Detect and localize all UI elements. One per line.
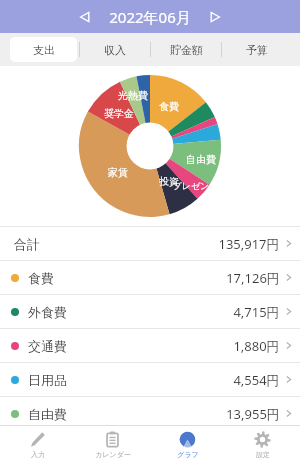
- staticText: 2022年06月: [109, 7, 191, 27]
- button[interactable]: 収入: [82, 37, 148, 62]
- staticText: 支出: [33, 43, 55, 57]
- button[interactable]: 貯金額: [153, 37, 219, 62]
- staticText: 予算: [246, 43, 268, 57]
- button[interactable]: 合計: [0, 227, 300, 260]
- staticText: 自由費: [28, 406, 67, 422]
- staticText: 135,917円: [218, 235, 280, 253]
- button[interactable]: 予算: [224, 37, 290, 62]
- button[interactable]: Previous month: [71, 3, 99, 31]
- button[interactable]: 自由費: [0, 397, 300, 430]
- button[interactable]: 入力: [0, 426, 75, 464]
- staticText: 食費: [159, 100, 179, 113]
- staticText: 4,554円: [233, 371, 280, 389]
- button[interactable]: 支出: [10, 37, 77, 62]
- button[interactable]: 食費: [0, 261, 300, 294]
- staticText: グラフ: [177, 450, 199, 459]
- button[interactable]: Next month: [201, 3, 229, 31]
- staticText: 設定: [256, 450, 270, 459]
- staticText: 交通費: [28, 338, 67, 354]
- button[interactable]: 外食費: [0, 295, 300, 328]
- button[interactable]: グラフ: [150, 426, 225, 464]
- staticText: 光熱費: [118, 89, 148, 102]
- staticText: 1,880円: [233, 337, 280, 355]
- staticText: カレンダー: [95, 450, 131, 459]
- staticText: 家賃: [108, 166, 128, 179]
- button[interactable]: 日用品: [0, 363, 300, 396]
- button[interactable]: カレンダー: [75, 426, 150, 464]
- staticText: 自由費: [186, 153, 216, 166]
- staticText: 日用品: [28, 372, 67, 388]
- staticText: プレゼント: [172, 180, 219, 191]
- staticText: 食費: [28, 270, 54, 286]
- staticText: 入力: [31, 450, 45, 459]
- staticText: 4,715円: [233, 303, 280, 321]
- staticText: 奨学金: [104, 107, 134, 120]
- button[interactable]: 交通費: [0, 329, 300, 362]
- staticText: 貯金額: [170, 43, 203, 57]
- staticText: 合計: [14, 236, 40, 252]
- staticText: 収入: [104, 43, 126, 57]
- staticText: 17,126円: [226, 269, 280, 287]
- button[interactable]: 設定: [225, 426, 300, 464]
- staticText: 投資: [159, 175, 179, 188]
- staticText: 外食費: [28, 304, 67, 320]
- staticText: 13,955円: [226, 405, 280, 423]
